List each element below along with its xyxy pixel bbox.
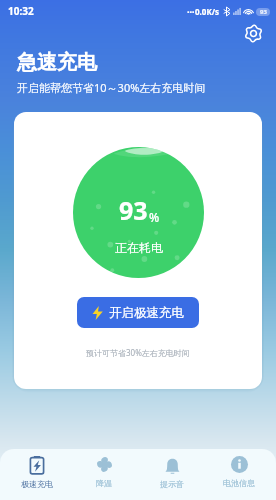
- staticText: 提示音: [160, 479, 184, 489]
- button[interactable]: 提示音: [142, 456, 202, 489]
- staticText: 正在耗电: [115, 240, 163, 255]
- button[interactable]: Settings: [239, 19, 267, 47]
- button[interactable]: 降温: [74, 456, 134, 488]
- staticText: 预计可节省30%左右充电时间: [86, 347, 190, 358]
- button[interactable]: 极速充电: [7, 456, 67, 489]
- staticText: 开启极速充电: [109, 305, 184, 321]
- staticText: ⋯0.0K/s: [187, 6, 220, 17]
- staticText: 93: [260, 8, 267, 16]
- staticText: 极速充电: [21, 479, 53, 489]
- staticText: 93: [119, 193, 148, 227]
- staticText: %: [149, 209, 160, 225]
- staticText: 电池信息: [223, 478, 255, 488]
- staticText: 急速充电: [17, 50, 97, 75]
- button[interactable]: 电池信息: [209, 456, 269, 488]
- staticText: 开启能帮您节省10～30%左右充电时间: [17, 80, 206, 95]
- staticText: 10:32: [8, 4, 34, 18]
- staticText: 降温: [96, 478, 112, 488]
- button[interactable]: 开启极速充电: [77, 297, 199, 328]
